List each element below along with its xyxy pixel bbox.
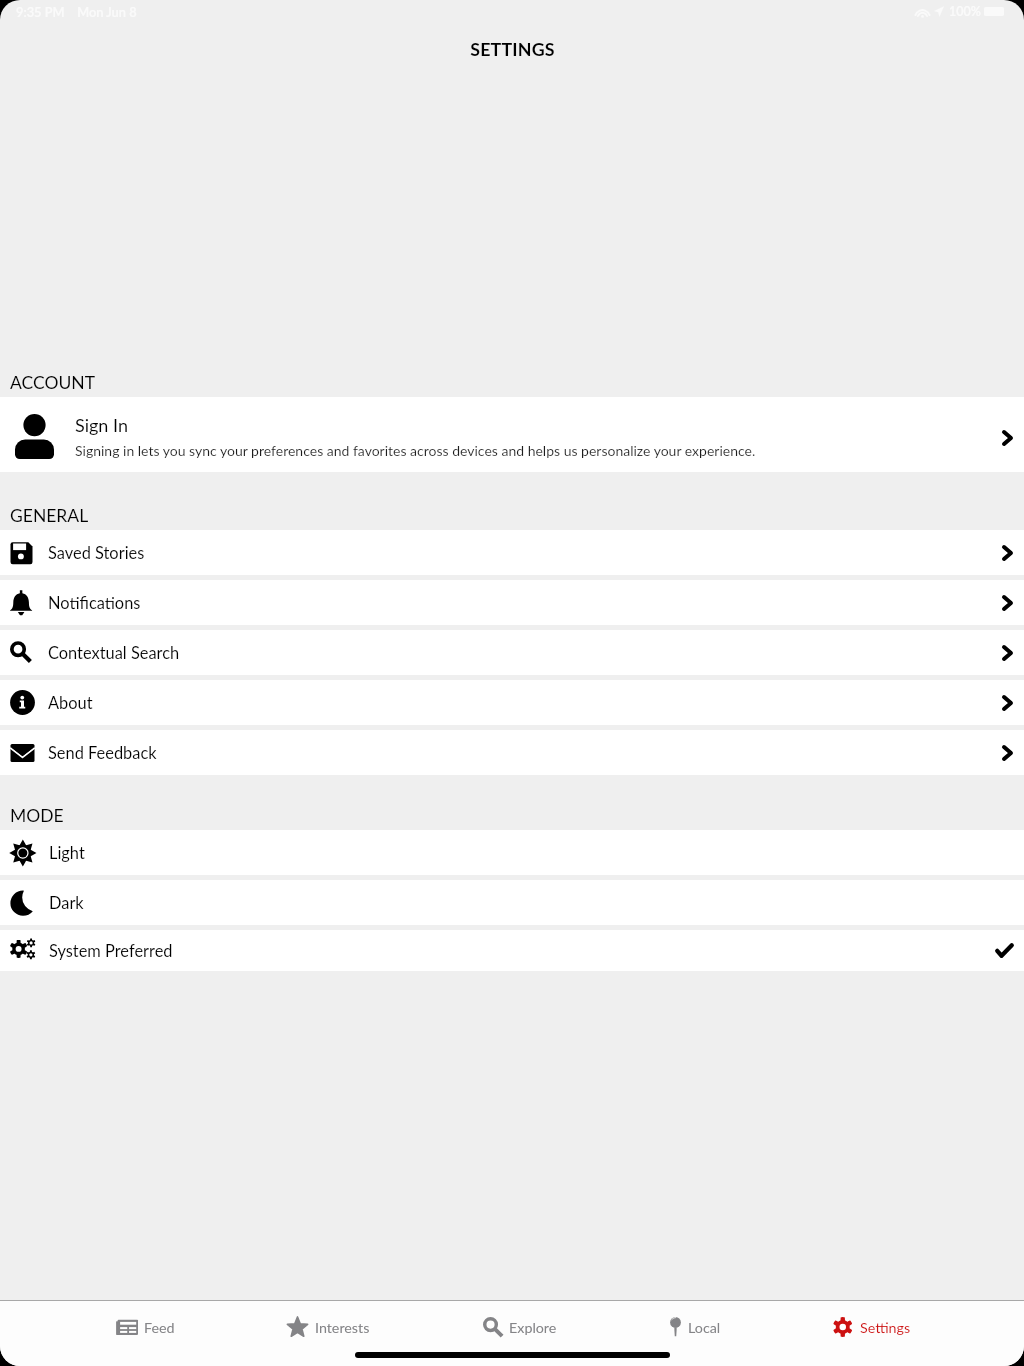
button[interactable]: Light: [0, 830, 1024, 875]
button[interactable]: Contextual Search: [0, 630, 1024, 675]
staticText: Notifications: [48, 593, 141, 613]
staticText: Signing in lets you sync your preference…: [75, 442, 756, 459]
staticText: Explore: [509, 1319, 557, 1336]
staticText: Contextual Search: [48, 643, 180, 663]
button[interactable]: Explore: [483, 1301, 557, 1353]
staticText: Feed: [144, 1319, 175, 1336]
button[interactable]: Feed: [113, 1301, 175, 1353]
button[interactable]: About: [0, 680, 1024, 725]
staticText: Local: [688, 1319, 721, 1336]
button[interactable]: Sign In: [0, 397, 1024, 472]
staticText: About: [48, 693, 93, 713]
button[interactable]: Notifications: [0, 580, 1024, 625]
staticText: ACCOUNT: [10, 372, 95, 393]
button[interactable]: Interests: [287, 1301, 370, 1353]
button[interactable]: Saved Stories: [0, 530, 1024, 575]
staticText: MODE: [10, 805, 64, 826]
staticText: Send Feedback: [48, 743, 157, 763]
staticText: GENERAL: [10, 505, 89, 526]
staticText: Interests: [315, 1319, 370, 1336]
staticText: Dark: [49, 893, 84, 913]
staticText: SETTINGS: [470, 38, 555, 59]
staticText: System Preferred: [49, 941, 173, 961]
button[interactable]: Dark: [0, 880, 1024, 925]
staticText: Settings: [860, 1319, 911, 1336]
staticText: 9:35 PM Mon Jun 8: [16, 4, 137, 19]
button[interactable]: Send Feedback: [0, 730, 1024, 775]
staticText: Sign In: [75, 414, 128, 436]
button[interactable]: System Preferred: [0, 930, 1024, 971]
staticText: Light: [49, 843, 85, 863]
button[interactable]: Settings: [833, 1301, 911, 1353]
button[interactable]: Local: [670, 1301, 721, 1353]
staticText: Saved Stories: [48, 543, 145, 563]
staticText: 100%: [949, 4, 981, 19]
